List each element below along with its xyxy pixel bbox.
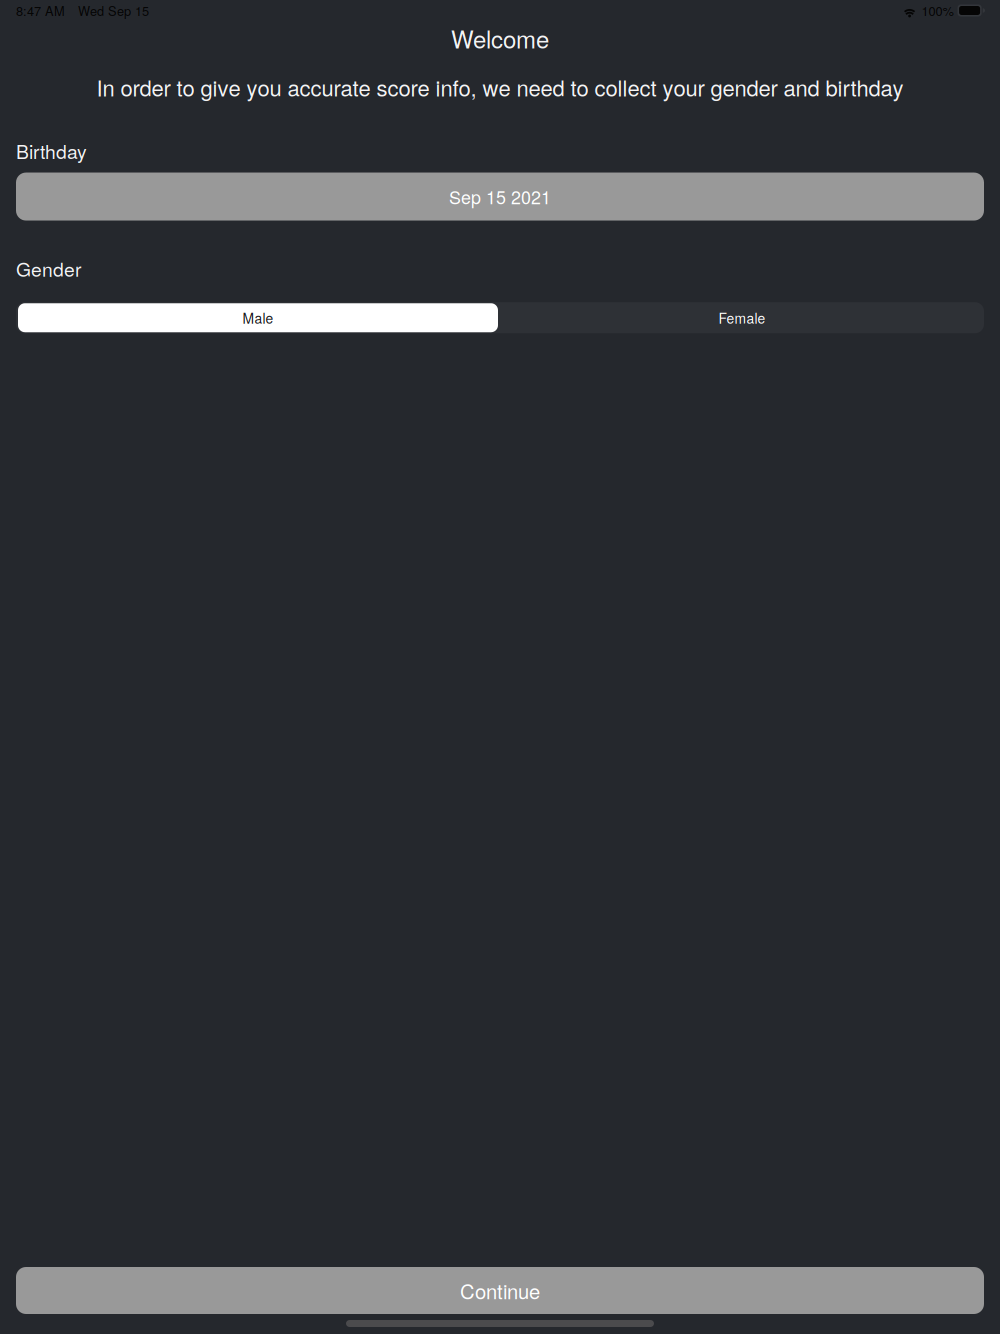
button[interactable]: Sep 15 2021: [16, 173, 984, 221]
button[interactable]: Female: [500, 302, 984, 333]
staticText: 100%: [922, 1, 954, 20]
staticText: Sep 15 2021: [449, 184, 551, 209]
button[interactable]: Male: [16, 302, 500, 333]
staticText: Birthday: [16, 137, 87, 165]
staticText: Gender: [16, 255, 81, 282]
staticText: Male: [242, 308, 273, 328]
button[interactable]: Continue: [16, 1267, 984, 1314]
staticText: Welcome: [451, 21, 549, 55]
staticText: Continue: [460, 1276, 540, 1305]
staticText: In order to give you accurate score info…: [96, 71, 903, 103]
staticText: 8:47 AM: [16, 1, 65, 20]
staticText: Female: [718, 308, 765, 328]
staticText: Wed Sep 15: [78, 1, 149, 20]
